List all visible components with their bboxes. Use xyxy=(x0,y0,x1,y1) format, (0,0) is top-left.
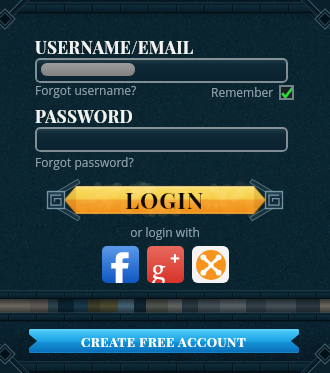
button[interactable]: Log in with Jagex account xyxy=(192,246,229,283)
staticText: PASSWORD xyxy=(35,105,134,128)
button[interactable]: Remember me xyxy=(279,85,294,100)
staticText: LOGIN xyxy=(125,184,205,215)
button[interactable] xyxy=(35,58,288,83)
button[interactable]: Forgot password? xyxy=(35,154,134,170)
button[interactable]: Log in with Facebook xyxy=(102,246,139,283)
button[interactable] xyxy=(35,127,288,152)
staticText: Remember xyxy=(211,84,274,100)
button[interactable]: CREATE FREE ACCOUNT xyxy=(29,329,299,353)
button[interactable]: Forgot username? xyxy=(35,82,137,98)
staticText: g xyxy=(152,248,166,283)
button[interactable]: Log in with Google Plus xyxy=(147,246,184,283)
staticText: USERNAME/EMAIL xyxy=(35,36,194,59)
staticText: CREATE FREE ACCOUNT xyxy=(81,333,247,350)
button[interactable]: Remember xyxy=(211,84,294,100)
button[interactable]: LOGIN xyxy=(45,181,285,219)
staticText: or login with xyxy=(0,224,330,240)
